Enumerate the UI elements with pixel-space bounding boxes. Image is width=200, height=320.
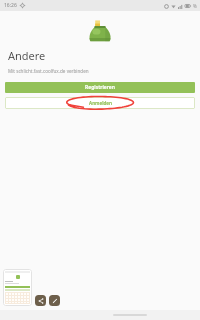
staticText: 16:26 [4,2,17,9]
staticText: Mit schlicht.fast.coolfux.de verbinden [8,68,89,74]
button[interactable]: Screenshot preview [3,269,32,306]
button[interactable]: Share [35,295,46,306]
button[interactable]: Edit [49,295,60,306]
button[interactable]: Anmelden [5,97,195,109]
staticText: Andere [8,48,46,63]
staticText: Anmelden [89,100,112,106]
staticText: % [193,3,197,9]
button[interactable]: Registrieren [5,82,195,93]
staticText: Registrieren [85,84,115,91]
